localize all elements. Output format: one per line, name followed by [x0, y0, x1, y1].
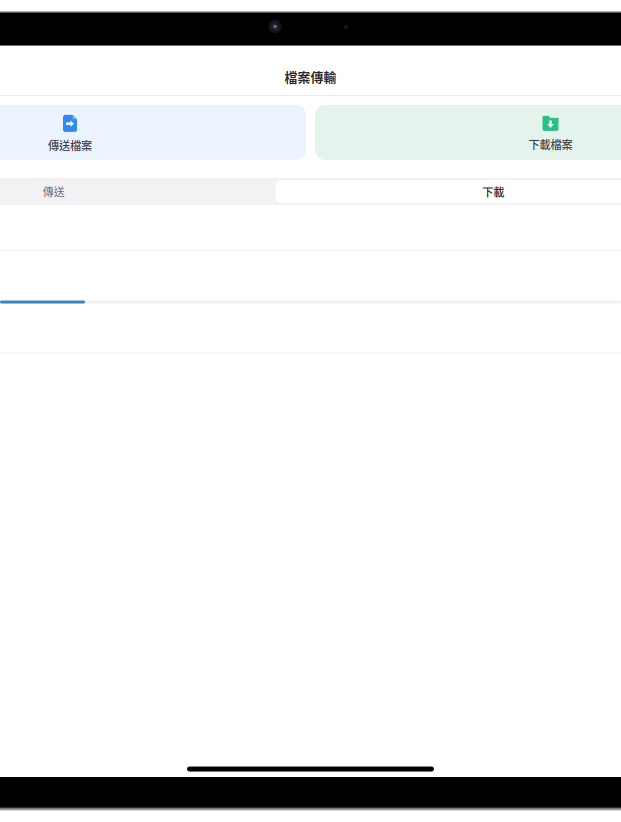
staticText: 傳送	[43, 184, 65, 199]
staticText: 下載檔案	[528, 136, 572, 152]
button[interactable]: 傳送	[0, 178, 273, 205]
button[interactable]: 下載檔案	[315, 105, 621, 160]
button[interactable]: 下載	[273, 178, 621, 205]
staticText: 下載	[482, 183, 504, 200]
button[interactable]: 傳送檔案	[0, 105, 306, 160]
staticText: 檔案傳輸	[284, 67, 336, 86]
staticText: 傳送檔案	[48, 137, 92, 153]
